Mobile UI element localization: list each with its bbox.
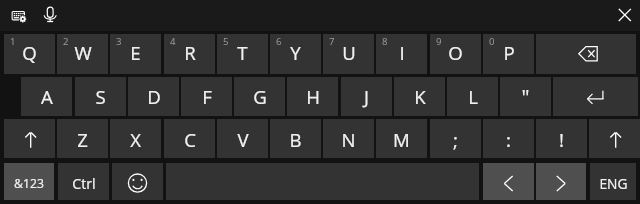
button[interactable]: 9 [430, 34, 481, 74]
button[interactable]: Enter [553, 77, 638, 116]
staticText: S [95, 84, 106, 109]
staticText: T [237, 40, 248, 65]
button[interactable]: L [447, 77, 498, 116]
button[interactable]: N [323, 119, 374, 158]
staticText: A [41, 84, 53, 109]
staticText: 1 [10, 35, 16, 48]
button[interactable]: S [75, 77, 126, 116]
button[interactable]: V [217, 119, 268, 158]
staticText: B [289, 127, 302, 152]
staticText: C [184, 127, 196, 152]
button[interactable]: K [394, 77, 445, 116]
staticText: R [184, 40, 196, 65]
staticText: F [202, 84, 212, 109]
button[interactable]: 1 [4, 34, 55, 74]
staticText: 7 [329, 35, 335, 48]
staticText: 4 [170, 35, 176, 48]
staticText: Z [77, 127, 88, 152]
button[interactable]: ; [430, 119, 481, 158]
button[interactable]: X [110, 119, 161, 158]
staticText: 5 [223, 35, 229, 48]
staticText: U [342, 40, 356, 65]
staticText: 2 [63, 35, 69, 48]
staticText: 3 [116, 35, 122, 48]
button[interactable]: C [164, 119, 215, 158]
staticText: " [521, 83, 530, 110]
staticText: 8 [382, 35, 388, 48]
staticText: N [341, 127, 356, 152]
button[interactable]: : [483, 119, 534, 158]
button[interactable]: 4 [164, 34, 215, 74]
button[interactable]: A [21, 77, 72, 116]
button[interactable]: Shift [589, 119, 640, 158]
staticText: D [147, 84, 161, 109]
button[interactable]: ! [536, 119, 587, 158]
staticText: 6 [276, 35, 282, 48]
staticText: 0 [489, 35, 495, 48]
button[interactable]: ENG [590, 163, 636, 200]
staticText: P [503, 40, 515, 65]
button[interactable]: 2 [57, 34, 108, 74]
staticText: ! [559, 127, 564, 152]
button[interactable]: Voice input [40, 2, 62, 26]
staticText: W [74, 40, 92, 65]
button[interactable]: Backspace [536, 34, 636, 74]
button[interactable]: Z [57, 119, 108, 158]
staticText: X [130, 127, 141, 152]
staticText: Ctrl [72, 174, 96, 193]
button[interactable]: Move cursor right [536, 163, 586, 200]
button[interactable]: " [500, 77, 551, 116]
button[interactable]: H [287, 77, 338, 116]
button[interactable]: J [341, 77, 392, 116]
staticText: M [393, 127, 410, 152]
staticText: ENG [599, 174, 628, 193]
button[interactable]: G [234, 77, 285, 116]
staticText: H [306, 84, 320, 109]
button[interactable]: Keyboard settings [6, 2, 32, 28]
button[interactable]: F [181, 77, 232, 116]
button[interactable]: Ctrl [58, 163, 109, 200]
staticText: &123 [14, 175, 44, 192]
staticText: 9 [436, 35, 442, 48]
staticText: G [253, 84, 267, 109]
button[interactable]: 6 [270, 34, 321, 74]
button[interactable]: &123 [4, 163, 54, 200]
button[interactable]: B [270, 119, 321, 158]
button[interactable]: 3 [110, 34, 161, 74]
staticText: Q [22, 40, 37, 65]
button[interactable]: 8 [376, 34, 427, 74]
button[interactable]: 5 [217, 34, 268, 74]
button[interactable]: D [128, 77, 179, 116]
staticText: K [414, 84, 426, 109]
staticText: O [448, 40, 463, 65]
button[interactable]: 7 [323, 34, 374, 74]
staticText: V [237, 127, 249, 152]
staticText: : [506, 127, 511, 152]
staticText: ; [453, 127, 458, 152]
button[interactable]: M [376, 119, 427, 158]
button[interactable]: Close [613, 3, 637, 27]
button[interactable]: Move cursor left [483, 163, 534, 200]
button[interactable]: 0 [483, 34, 534, 74]
button[interactable]: Emoji [112, 163, 163, 200]
staticText: Y [290, 40, 301, 65]
staticText: L [468, 84, 478, 109]
button[interactable]: Shift [4, 119, 55, 158]
staticText: J [364, 84, 369, 109]
staticText: E [130, 40, 141, 65]
staticText: I [399, 40, 405, 65]
